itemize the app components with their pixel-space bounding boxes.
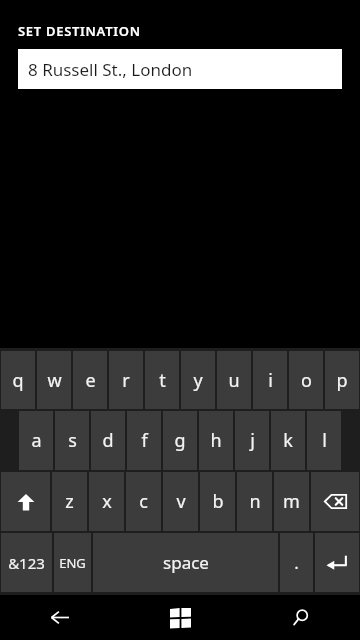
button[interactable]: v <box>163 472 198 531</box>
button[interactable]: w <box>37 351 71 409</box>
staticText: space <box>163 551 209 574</box>
button[interactable]: Search <box>240 595 360 640</box>
button[interactable]: ENG <box>54 533 91 592</box>
button[interactable]: m <box>274 472 309 531</box>
button[interactable]: Start <box>120 595 240 640</box>
staticText: q <box>12 368 24 393</box>
staticText: n <box>249 489 261 514</box>
staticText: &123 <box>8 553 45 573</box>
button[interactable]: e <box>73 351 107 409</box>
button[interactable]: q <box>1 351 35 409</box>
staticText: t <box>159 368 166 393</box>
staticText: . <box>294 551 299 574</box>
button[interactable]: h <box>199 411 233 470</box>
button[interactable]: 8 Russell St., London <box>18 49 342 89</box>
button[interactable]: t <box>145 351 179 409</box>
button[interactable]: i <box>253 351 287 409</box>
staticText: a <box>31 428 42 453</box>
staticText: k <box>283 428 293 453</box>
button[interactable]: g <box>163 411 197 470</box>
staticText: x <box>102 489 112 514</box>
button[interactable]: r <box>109 351 143 409</box>
staticText: f <box>141 428 148 453</box>
staticText: o <box>301 368 312 393</box>
staticText: i <box>268 368 273 393</box>
button[interactable]: p <box>325 351 359 409</box>
button[interactable]: s <box>55 411 89 470</box>
staticText: c <box>139 489 148 514</box>
button[interactable]: c <box>126 472 161 531</box>
button[interactable]: &123 <box>1 533 52 592</box>
button[interactable]: Backspace <box>311 472 359 531</box>
staticText: s <box>68 428 77 453</box>
staticText: p <box>336 368 348 393</box>
button[interactable]: a <box>19 411 53 470</box>
button[interactable]: n <box>237 472 272 531</box>
button[interactable]: Enter <box>315 533 359 592</box>
staticText: h <box>210 428 222 453</box>
staticText: m <box>283 489 300 514</box>
button[interactable]: b <box>200 472 235 531</box>
button[interactable]: l <box>307 411 341 470</box>
button[interactable]: j <box>235 411 269 470</box>
staticText: e <box>85 368 96 393</box>
button[interactable]: Shift <box>1 472 50 531</box>
staticText: z <box>65 489 74 514</box>
staticText: v <box>176 489 186 514</box>
button[interactable]: u <box>217 351 251 409</box>
staticText: ENG <box>59 554 86 572</box>
staticText: w <box>47 368 62 393</box>
staticText: y <box>193 368 203 393</box>
button[interactable]: z <box>52 472 87 531</box>
button[interactable]: f <box>127 411 161 470</box>
button[interactable]: k <box>271 411 305 470</box>
staticText: r <box>122 368 130 393</box>
staticText: g <box>174 428 186 453</box>
button[interactable]: d <box>91 411 125 470</box>
staticText: d <box>102 428 114 453</box>
staticText: SET DESTINATION <box>18 22 141 40</box>
button[interactable]: . <box>280 533 313 592</box>
staticText: l <box>322 428 327 453</box>
staticText: u <box>228 368 240 393</box>
button[interactable]: o <box>289 351 323 409</box>
staticText: j <box>250 428 255 453</box>
staticText: 8 Russell St., London <box>28 58 193 81</box>
button[interactable]: x <box>89 472 124 531</box>
button[interactable]: space <box>93 533 278 592</box>
button[interactable]: Back <box>0 595 120 640</box>
button[interactable]: y <box>181 351 215 409</box>
staticText: b <box>212 489 224 514</box>
